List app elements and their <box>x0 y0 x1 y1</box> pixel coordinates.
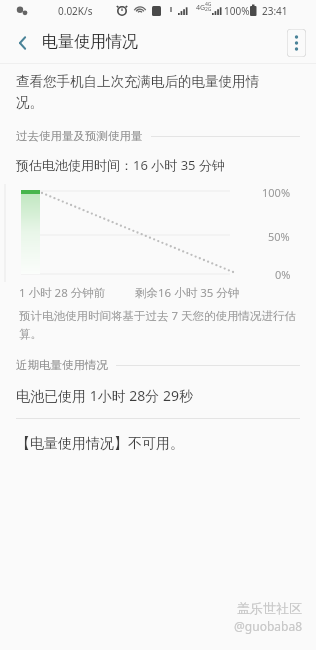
button[interactable]: 更多选项 <box>287 29 306 57</box>
staticText: @guobaba8 <box>234 618 302 634</box>
staticText: 查看您手机自上次充满电后的电量使用情 况。 <box>16 73 259 111</box>
staticText: 电量使用情况 <box>42 32 138 52</box>
staticText: 预计电池使用时间将基于过去 7 天您的使用情况进行估 算。 <box>19 308 297 341</box>
staticText: 剩余16 小时 35 分钟 <box>135 285 240 301</box>
staticText: 0% <box>275 267 291 282</box>
staticText: 0.02K/s <box>58 4 93 18</box>
staticText: 盖乐世社区 <box>237 600 302 616</box>
staticText: 预估电池使用时间：16 小时 35 分钟 <box>16 156 225 174</box>
button[interactable]: 返回 <box>8 28 38 58</box>
staticText: 23:41 <box>262 4 288 18</box>
staticText: 4G 2G <box>205 1 212 12</box>
staticText: 过去使用量及预测使用量 <box>16 129 143 143</box>
staticText: 近期电量使用情况 <box>16 358 108 372</box>
staticText: 4G <box>196 3 206 13</box>
staticText: 1 小时 28 分钟前 <box>19 285 106 301</box>
staticText: 100% <box>262 185 291 200</box>
staticText: 100% <box>224 4 250 18</box>
staticText: 电池已使用 1小时 28分 29秒 <box>16 386 193 405</box>
staticText: 50% <box>268 229 290 244</box>
staticText: 【电量使用情况】不可用。 <box>16 435 184 453</box>
